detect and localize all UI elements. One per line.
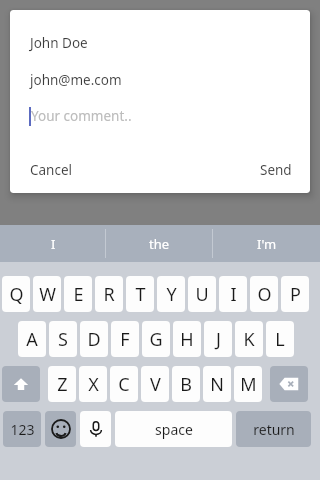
staticText: 123 [10,420,35,439]
button[interactable]: 123 [3,411,41,447]
staticText: return [253,420,295,439]
staticText: U [195,282,209,307]
button[interactable]: I [0,225,106,262]
button[interactable]: L [266,321,294,357]
staticText: R [103,282,115,307]
staticText: I [230,282,237,307]
staticText: M [240,372,257,397]
button[interactable]: D [80,321,108,357]
staticText: Cancel [30,161,73,179]
button[interactable]: return [236,411,311,447]
staticText: John Doe [30,34,88,52]
staticText: I [51,235,56,253]
staticText: W [39,282,56,307]
button[interactable]: V [141,366,169,402]
button[interactable]: Z [48,366,76,402]
button[interactable]: Q [2,276,30,312]
button[interactable]: Your comment.. [10,101,310,131]
staticText: S [58,327,68,352]
button[interactable]: N [203,366,231,402]
staticText: J [216,327,221,352]
button[interactable]: O [250,276,278,312]
button[interactable]: I [219,276,247,312]
staticText: space [155,420,193,439]
button[interactable]: M [234,366,262,402]
staticText: B [180,372,192,397]
staticText: Y [166,282,177,307]
staticText: K [243,327,255,352]
button[interactable]: Send [246,147,310,193]
button[interactable]: H [173,321,201,357]
button[interactable]: the [106,225,213,262]
button[interactable]: S [49,321,77,357]
staticText: H [180,327,194,352]
staticText: P [290,282,301,307]
staticText: D [87,327,101,352]
button[interactable]: Cancel [10,147,87,193]
button[interactable]: John Doe [10,28,310,58]
button[interactable]: T [126,276,154,312]
button[interactable]: E [64,276,92,312]
button[interactable]: I'm [213,225,320,262]
staticText: C [118,372,130,397]
button[interactable]: Y [157,276,185,312]
button[interactable]: X [79,366,107,402]
staticText: Q [9,282,24,307]
button[interactable]: A [18,321,46,357]
staticText: L [275,327,285,352]
button[interactable]: Voice input [80,411,111,447]
button[interactable]: C [110,366,138,402]
button[interactable]: G [142,321,170,357]
staticText: Send [260,161,292,179]
staticText: Z [57,372,68,397]
staticText: N [210,372,224,397]
staticText: I'm [257,235,277,253]
staticText: F [120,327,130,352]
button[interactable]: space [115,411,232,447]
button[interactable]: U [188,276,216,312]
staticText: E [73,282,84,307]
staticText: A [26,327,38,352]
staticText: G [149,327,163,352]
staticText: T [135,282,146,307]
button[interactable]: J [204,321,232,357]
button[interactable]: F [111,321,139,357]
button[interactable]: Backspace [270,366,308,402]
button[interactable]: W [33,276,61,312]
button[interactable]: R [95,276,123,312]
staticText: john@me.com [30,71,122,89]
staticText: O [257,282,272,307]
staticText: Your comment.. [31,107,132,125]
button[interactable]: Shift [2,366,40,402]
button[interactable]: P [281,276,309,312]
button[interactable]: B [172,366,200,402]
staticText: X [88,372,99,397]
staticText: the [149,235,170,253]
staticText: V [150,372,161,397]
button[interactable]: Emoji [45,411,76,447]
button[interactable]: K [235,321,263,357]
button[interactable]: john@me.com [10,65,310,95]
